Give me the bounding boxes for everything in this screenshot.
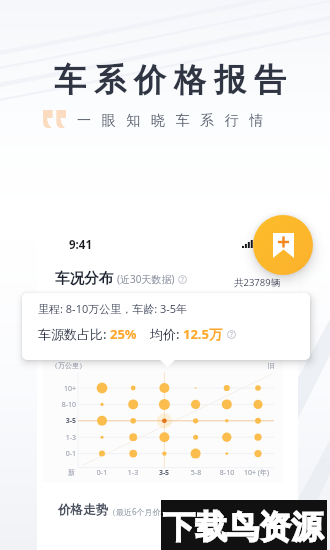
- staticText: ?: [230, 330, 233, 339]
- staticText: 10+ (年): [244, 468, 272, 478]
- staticText: 5-8: [182, 468, 210, 478]
- staticText: 8-10: [54, 400, 76, 410]
- staticText: 3-5: [150, 468, 178, 478]
- staticText: 1-3: [119, 468, 147, 478]
- staticText: 1-3: [54, 433, 76, 443]
- staticText: (近30天数据): [117, 272, 175, 286]
- staticText: 9:41: [69, 237, 92, 253]
- staticText: 0-1: [88, 468, 116, 478]
- staticText: 0-1: [54, 449, 76, 459]
- staticText: 一眼知晓车系行情: [77, 112, 274, 130]
- staticText: 新: [68, 468, 75, 477]
- staticText: 25%: [110, 325, 137, 343]
- staticText: （最近6个月价格）: [108, 506, 177, 517]
- staticText: 车况分布: [55, 269, 113, 287]
- staticText: 12.5万: [183, 325, 222, 343]
- staticText: 价格走势: [58, 502, 108, 518]
- staticText: 共23789辆: [234, 276, 281, 289]
- staticText: （万公里）: [51, 361, 86, 370]
- staticText: 8-10: [213, 468, 241, 478]
- button[interactable]: 收藏车系: [253, 215, 313, 275]
- staticText: ?: [181, 275, 184, 284]
- staticText: 下载鸟资源: [163, 507, 323, 547]
- staticText: 10+: [54, 384, 76, 394]
- staticText: 均价:: [150, 325, 183, 343]
- staticText: 车系价格报告: [50, 60, 290, 100]
- staticText: 旧: [268, 361, 275, 370]
- staticText: 车源数占比:: [38, 325, 110, 343]
- staticText: 里程: 8-10万公里，车龄: 3-5年: [38, 301, 188, 316]
- staticText: 3-5: [54, 416, 76, 426]
